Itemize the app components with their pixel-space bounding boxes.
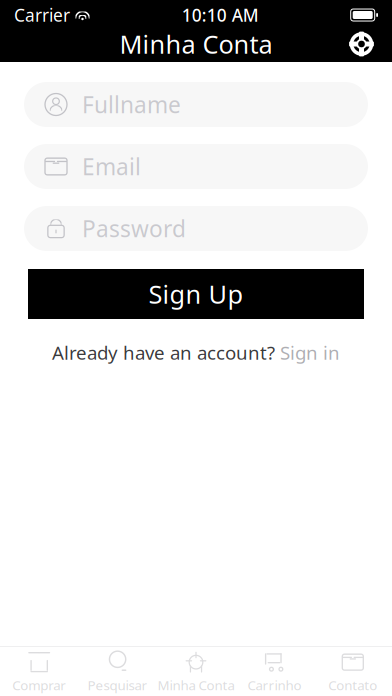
staticText: Sign Up: [148, 277, 243, 311]
staticText: Carrinho: [247, 676, 301, 694]
staticText: Contato: [328, 676, 377, 694]
button[interactable]: Carrinho: [235, 645, 314, 696]
button[interactable]: Sign Up: [28, 269, 364, 319]
staticText: Minha Conta: [119, 27, 272, 61]
staticText: Sign in: [280, 340, 340, 365]
staticText: Pesquisar: [88, 676, 148, 694]
button[interactable]: Contato: [314, 645, 392, 696]
staticText: Email: [82, 151, 141, 181]
staticText: Comprar: [12, 676, 66, 694]
button[interactable]: Fullname: [24, 82, 368, 127]
staticText: Already have an account?: [52, 340, 275, 365]
staticText: 10:10 AM: [182, 3, 259, 26]
button[interactable]: Email: [24, 144, 368, 189]
staticText: Carrier: [14, 3, 70, 26]
button[interactable]: Pesquisar: [78, 645, 157, 696]
button[interactable]: Comprar: [0, 645, 78, 696]
button[interactable]: Minha Conta: [157, 645, 235, 696]
staticText: Minha Conta: [157, 676, 234, 694]
staticText: Fullname: [82, 89, 181, 119]
button[interactable]: Settings: [337, 25, 386, 62]
button[interactable]: Already have an account?: [44, 336, 348, 369]
staticText: Password: [82, 213, 186, 243]
button[interactable]: Password: [24, 206, 368, 251]
